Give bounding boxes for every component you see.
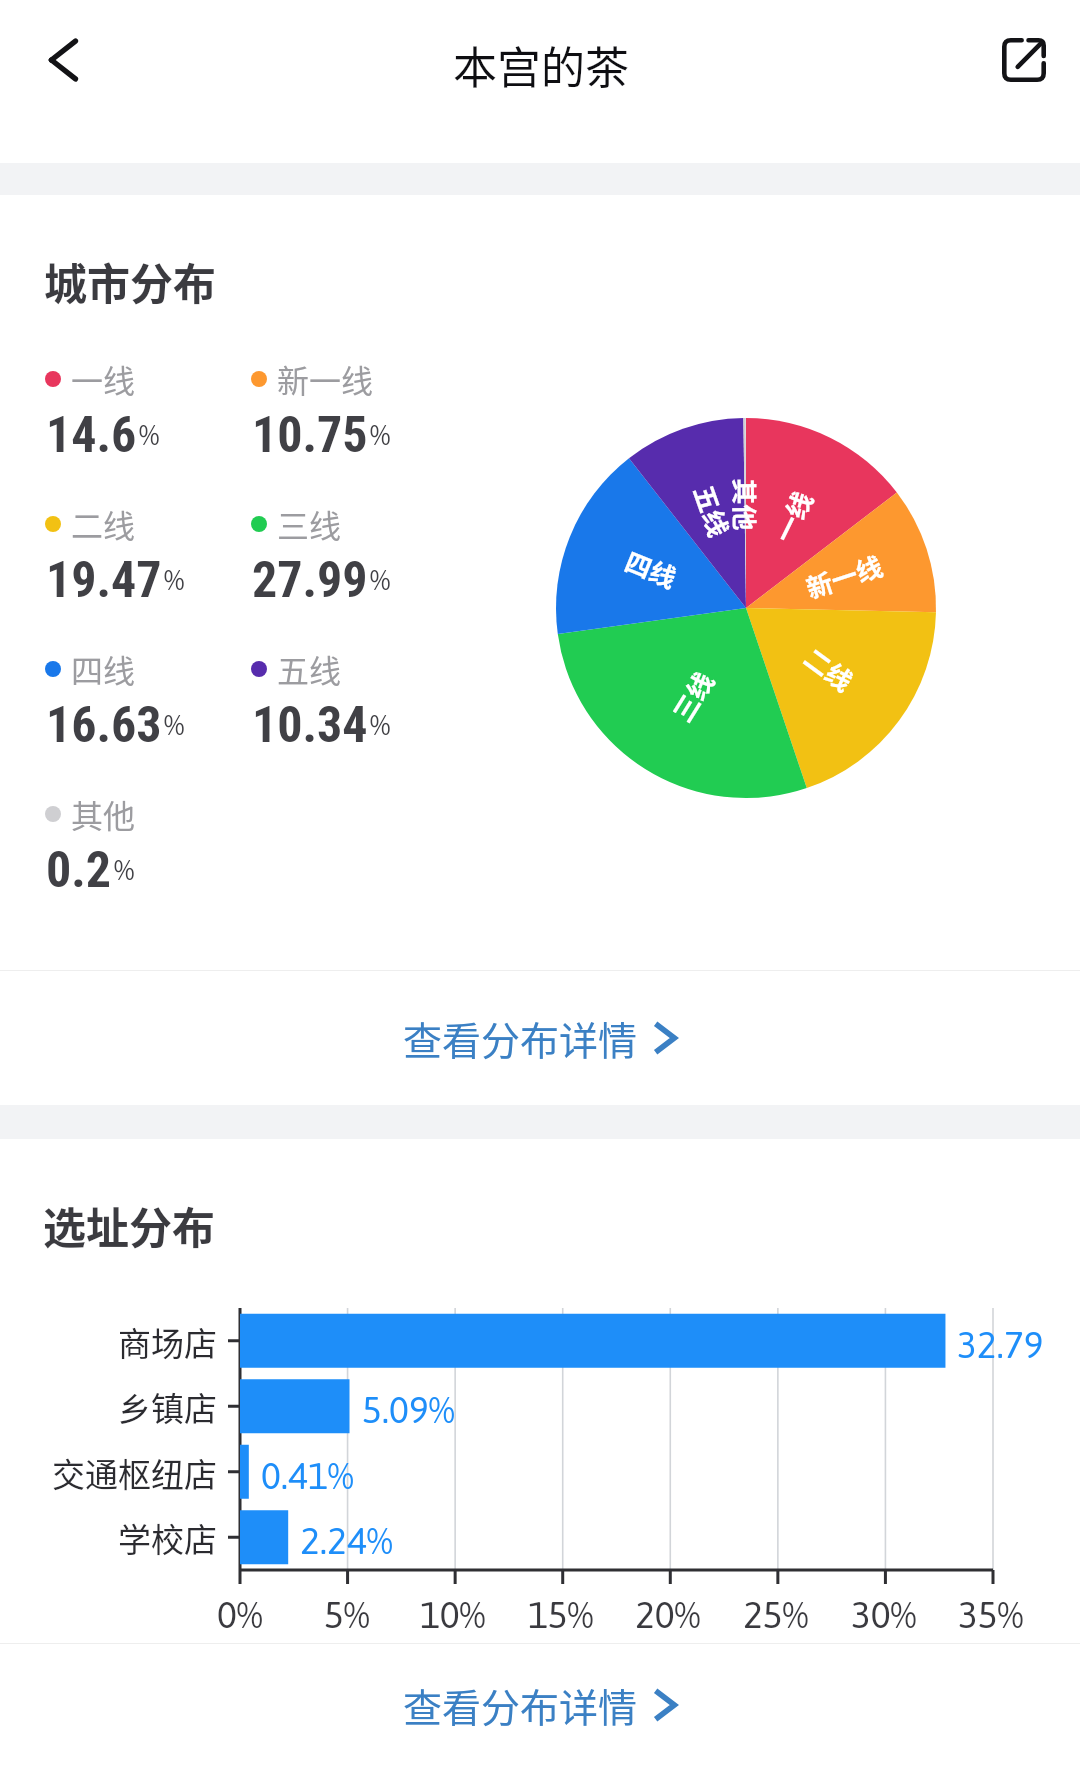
staticText: 选址分布 [43, 1194, 215, 1256]
staticText: % [164, 563, 185, 596]
staticText: 14.6 [46, 406, 137, 465]
staticText: 五线 [686, 480, 739, 542]
staticText: 30% [851, 1593, 917, 1635]
staticText: 二线 [71, 501, 136, 547]
staticText: 五线 [277, 646, 342, 692]
staticText: 2.24% [300, 1519, 393, 1561]
staticText: 城市分布 [44, 250, 216, 312]
staticText: 5% [324, 1593, 370, 1635]
button[interactable]: Back [18, 16, 106, 104]
staticText: % [370, 708, 391, 741]
staticText: 10.75 [252, 406, 368, 465]
staticText: 三线 [662, 663, 723, 729]
staticText: 5.09% [362, 1388, 455, 1430]
staticText: 查看分布详情 [403, 1677, 638, 1733]
staticText: % [114, 853, 135, 886]
staticText: 二线 [797, 638, 862, 700]
button[interactable]: 查看分布详情 [0, 971, 1080, 1105]
staticText: 新一线 [801, 546, 888, 606]
staticText: % [370, 563, 391, 596]
staticText: 本宫的茶 [453, 33, 629, 97]
staticText: 20% [635, 1593, 701, 1635]
staticText: 一线 [71, 356, 136, 402]
staticText: 10.34 [252, 696, 368, 755]
staticText: 19.47 [46, 551, 162, 610]
staticText: 三线 [277, 501, 342, 547]
staticText: 16.63 [46, 696, 162, 755]
staticText: 四线 [620, 541, 683, 596]
staticText: % [139, 418, 160, 451]
staticText: 四线 [71, 646, 136, 692]
staticText: 新一线 [277, 356, 374, 402]
staticText: 交通枢纽店 [52, 1449, 217, 1497]
staticText: 商场店 [118, 1318, 217, 1366]
staticText: % [164, 708, 185, 741]
staticText: 0.41% [261, 1454, 354, 1496]
staticText: 查看分布详情 [403, 1010, 638, 1066]
staticText: 0% [217, 1593, 263, 1635]
staticText: 25% [743, 1593, 809, 1635]
staticText: 其他 [71, 791, 136, 837]
staticText: 其他 [726, 478, 765, 532]
staticText: 一线 [764, 484, 821, 548]
staticText: 0.2 [46, 841, 112, 900]
button[interactable]: Share [980, 16, 1068, 104]
staticText: 35% [958, 1593, 1024, 1635]
staticText: 学校店 [118, 1514, 217, 1562]
button[interactable]: 查看分布详情 [0, 1644, 1080, 1765]
staticText: 乡镇店 [118, 1383, 217, 1431]
staticText: % [370, 418, 391, 451]
staticText: 27.99 [252, 551, 368, 610]
staticText: 10% [420, 1593, 486, 1635]
staticText: 32.79 [957, 1323, 1044, 1365]
staticText: 15% [528, 1593, 594, 1635]
